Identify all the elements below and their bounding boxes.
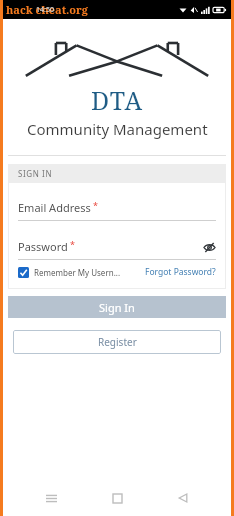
staticText: Password	[18, 239, 68, 254]
staticText: hack cheat.org	[6, 2, 88, 17]
staticText: Sign In	[99, 300, 135, 315]
staticText: Forgot Password?	[145, 266, 216, 278]
staticText: Community Management	[27, 119, 208, 139]
button[interactable]: Password	[18, 238, 216, 260]
button[interactable]: Remember My Usern...	[18, 267, 121, 278]
other: Show password	[203, 241, 216, 254]
staticText: Register	[98, 335, 137, 349]
staticText: SIGN IN	[18, 168, 53, 179]
staticText: *	[70, 238, 75, 250]
button[interactable]: Home	[99, 480, 135, 516]
staticText: Remember My Usern...	[34, 267, 121, 278]
staticText: *	[93, 199, 98, 211]
staticText: Email Address	[18, 200, 91, 215]
button[interactable]: Forgot Password?	[145, 266, 216, 278]
button[interactable]: Back	[165, 480, 201, 516]
staticText: DTA	[91, 83, 144, 117]
staticText: 14:50	[36, 5, 54, 15]
button[interactable]: Recent apps	[33, 480, 69, 516]
button[interactable]: Email Address	[18, 199, 216, 221]
button[interactable]: Sign In	[8, 296, 226, 318]
button[interactable]: Register	[13, 330, 221, 354]
